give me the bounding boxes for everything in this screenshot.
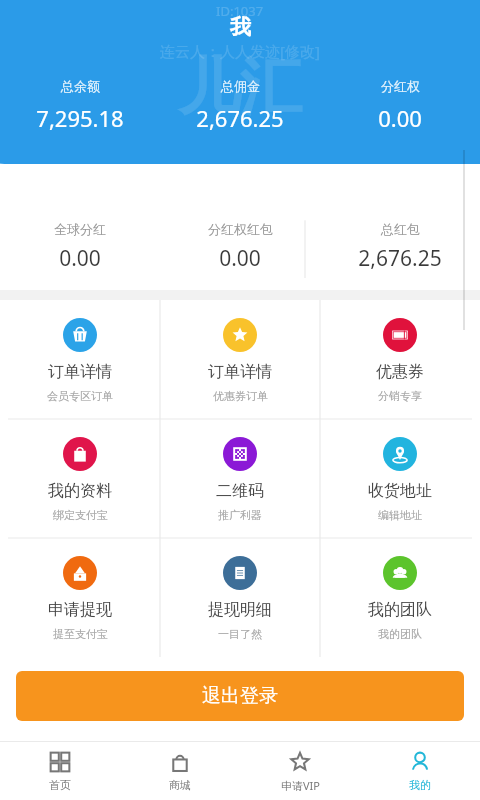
staticText: 总余额 [61, 78, 100, 94]
staticText: 提至支付宝 [53, 627, 108, 641]
button[interactable]: 退出登录 [16, 671, 464, 721]
staticText: 我的资料 [48, 481, 112, 501]
staticText: 儿汇 [178, 48, 302, 126]
staticText: 首页 [49, 778, 71, 792]
staticText: 7,295.18 [36, 103, 124, 133]
staticText: 我的团队 [368, 600, 432, 620]
staticText: 0.00 [59, 244, 101, 273]
staticText: 推广利器 [218, 508, 262, 522]
staticText: 提现明细 [208, 600, 272, 620]
button[interactable]: 收货地址 [320, 419, 480, 538]
staticText: 连云人：人人发迹[修改] [160, 41, 320, 61]
staticText: 编辑地址 [378, 508, 422, 522]
staticText: 2,676.25 [358, 244, 442, 273]
staticText: 优惠券订单 [213, 389, 268, 403]
staticText: 退出登录 [202, 684, 278, 708]
staticText: 我的团队 [378, 627, 422, 641]
staticText: 2,676.25 [196, 103, 284, 133]
button[interactable]: 申请提现 [0, 538, 160, 657]
staticText: 0.00 [378, 103, 422, 133]
staticText: 全球分红 [54, 221, 106, 237]
staticText: 分红权红包 [208, 221, 273, 237]
button[interactable]: 我的团队 [320, 538, 480, 657]
button[interactable]: 订单详情 [160, 300, 320, 419]
staticText: 二维码 [216, 481, 264, 501]
button[interactable]: 订单详情 [0, 300, 160, 419]
staticText: 我 [230, 14, 251, 40]
staticText: 0.00 [219, 244, 261, 273]
staticText: 分红权 [381, 78, 420, 94]
staticText: 总佣金 [221, 78, 260, 94]
staticText: 一目了然 [218, 627, 262, 641]
staticText: 订单详情 [208, 362, 272, 382]
staticText: 订单详情 [48, 362, 112, 382]
staticText: 绑定支付宝 [53, 508, 108, 522]
staticText: 申请提现 [48, 600, 112, 620]
button[interactable]: 二维码 [160, 419, 320, 538]
button[interactable]: 商城 [120, 742, 240, 800]
button[interactable]: 优惠券 [320, 300, 480, 419]
staticText: 分销专享 [378, 389, 422, 403]
staticText: ID:1037 [216, 2, 264, 20]
button[interactable]: 提现明细 [160, 538, 320, 657]
button[interactable]: 申请VIP [240, 742, 360, 800]
staticText: 我的 [409, 778, 431, 792]
staticText: 优惠券 [376, 362, 424, 382]
staticText: 收货地址 [368, 481, 432, 501]
staticText: 会员专区订单 [47, 389, 113, 403]
button[interactable]: 我的资料 [0, 419, 160, 538]
staticText: 商城 [169, 778, 191, 792]
button[interactable]: 我的 [360, 742, 480, 800]
button[interactable]: 首页 [0, 742, 120, 800]
staticText: 申请VIP [281, 778, 320, 793]
staticText: 总红包 [381, 221, 420, 237]
